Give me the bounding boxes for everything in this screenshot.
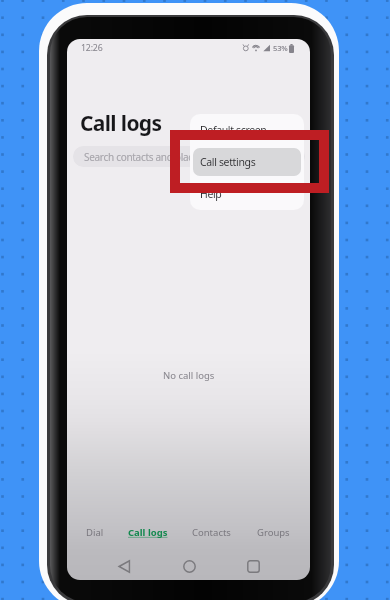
staticText: Dial	[86, 526, 104, 539]
staticText: Call settings	[200, 155, 256, 169]
staticText: Help	[200, 187, 222, 201]
staticText: Call logs	[128, 526, 168, 539]
button[interactable]: Dial	[67, 517, 123, 548]
button[interactable]: Call settings	[193, 148, 301, 176]
staticText: 12:26	[81, 42, 103, 54]
button[interactable]: Search contacts and places	[73, 146, 305, 167]
button[interactable]: Groups	[245, 517, 301, 548]
button[interactable]: Default screen	[193, 116, 301, 144]
staticText: Contacts	[192, 526, 231, 539]
button[interactable]: Back	[108, 549, 140, 580]
button[interactable]: Home	[173, 549, 205, 580]
button[interactable]: Contacts	[183, 517, 239, 548]
button[interactable]: Help	[193, 180, 301, 208]
staticText: Groups	[257, 526, 290, 539]
button[interactable]: Call logs	[120, 517, 176, 548]
button[interactable]: Recents	[237, 549, 269, 580]
staticText: Search contacts and places	[84, 150, 203, 164]
staticText: 53%	[273, 43, 288, 53]
staticText: Default screen	[200, 123, 267, 137]
staticText: Call logs	[80, 109, 162, 138]
staticText: No call logs	[163, 369, 215, 382]
